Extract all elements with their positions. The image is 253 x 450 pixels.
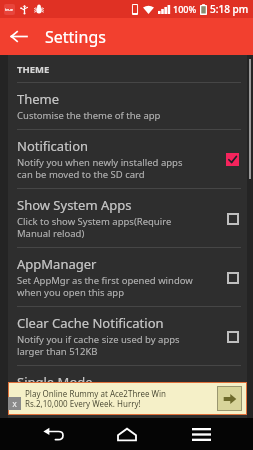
button[interactable]: Clear Cache Notification — [8, 307, 247, 366]
staticText: Settings — [45, 26, 106, 48]
button[interactable]: Home — [104, 418, 149, 450]
button[interactable]: Unchecked — [226, 330, 239, 343]
button[interactable]: AppManager — [8, 248, 247, 307]
staticText: Notify you if cache size used by apps la… — [17, 333, 180, 358]
staticText: Set AppMgr as the first opened window wh… — [17, 274, 193, 299]
button[interactable]: Show System Apps — [8, 189, 247, 248]
staticText: Play Online Rummy at Ace2Three Win Rs.2,… — [25, 388, 217, 409]
staticText: AppManager — [17, 255, 97, 273]
button[interactable]: Unchecked — [226, 386, 239, 399]
staticText: Theme — [17, 90, 60, 108]
staticText: Clear Cache Notification — [17, 314, 164, 332]
button[interactable]: Back — [0, 18, 37, 55]
staticText: Single Mode — [17, 373, 93, 391]
button[interactable]: Notification — [8, 130, 247, 189]
button[interactable]: Checked — [226, 153, 239, 166]
staticText: Click to show System apps(Require Manual… — [17, 215, 172, 240]
staticText: Switch to single or multiple move2sd mod… — [17, 392, 181, 411]
staticText: 100% — [173, 3, 197, 15]
staticText: Show System Apps — [17, 196, 132, 214]
staticText: THEME — [17, 63, 50, 76]
staticText: Notify you when newly installed apps can… — [17, 156, 183, 181]
staticText: true — [5, 7, 14, 12]
button[interactable]: Open ad — [217, 386, 242, 411]
button[interactable]: Unchecked — [226, 212, 239, 225]
button[interactable]: Play Online Rummy at Ace2Three Win Rs.2,… — [8, 382, 247, 415]
button[interactable]: Single Mode — [8, 366, 247, 418]
button[interactable]: Back — [30, 418, 75, 450]
staticText: Notification — [17, 137, 89, 155]
staticText: x — [12, 398, 17, 409]
staticText: Customise the theme of the app — [17, 109, 161, 122]
button[interactable]: Recent apps — [179, 418, 224, 450]
button[interactable]: Close ad — [8, 397, 21, 410]
staticText: 5:18 pm — [210, 2, 249, 16]
button[interactable]: Unchecked — [226, 271, 239, 284]
button[interactable]: Theme — [8, 83, 247, 130]
